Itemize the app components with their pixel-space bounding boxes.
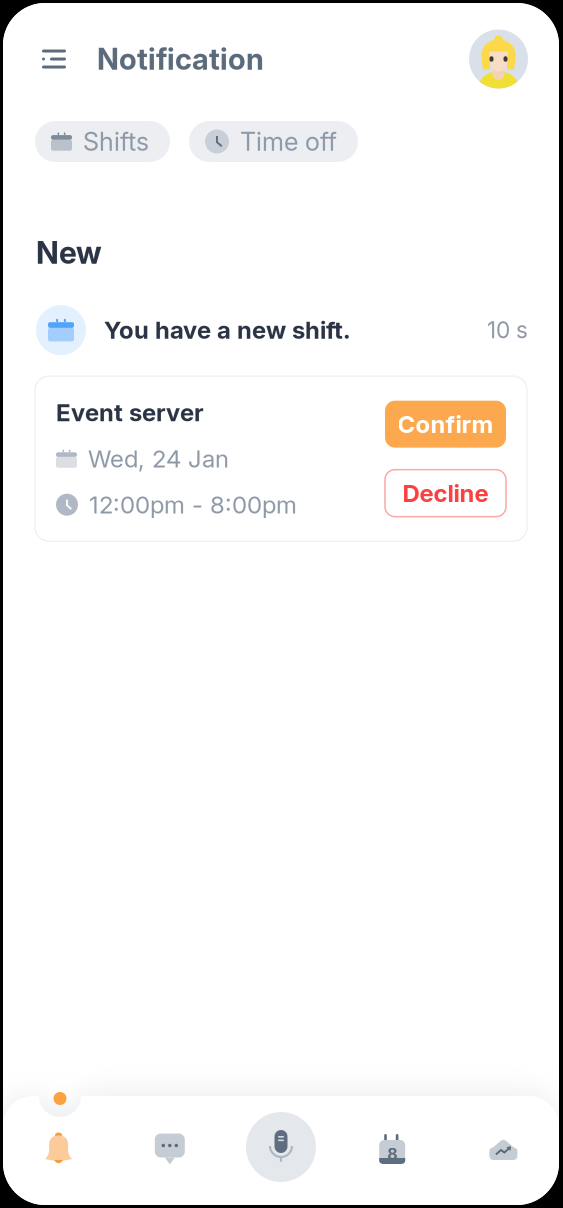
button[interactable]: Notifications (3, 1101, 114, 1197)
staticText: 10 s (487, 316, 528, 344)
staticText: Time off (240, 126, 337, 157)
button[interactable]: Confirm (385, 401, 506, 448)
staticText: You have a new shift. (104, 316, 351, 345)
button[interactable]: Shifts (35, 121, 170, 162)
staticText: Shifts (83, 126, 149, 157)
staticText: Event server (56, 398, 204, 427)
staticText: 8 (387, 1144, 397, 1164)
button[interactable]: Schedule (337, 1101, 448, 1197)
staticText: Decline (402, 479, 488, 508)
button[interactable]: Menu (32, 37, 76, 81)
button[interactable]: Profile (469, 29, 528, 88)
button[interactable]: Messages (114, 1101, 225, 1197)
button[interactable]: Time off (189, 121, 358, 162)
staticText: Confirm (397, 410, 493, 439)
button[interactable]: Record (225, 1101, 337, 1197)
staticText: Wed, 24 Jan (88, 444, 229, 473)
button[interactable]: Stats (448, 1101, 559, 1197)
staticText: 12:00pm - 8:00pm (89, 490, 297, 519)
staticText: New (36, 234, 102, 271)
staticText: Notification (97, 41, 264, 77)
button[interactable]: Decline (385, 470, 506, 517)
